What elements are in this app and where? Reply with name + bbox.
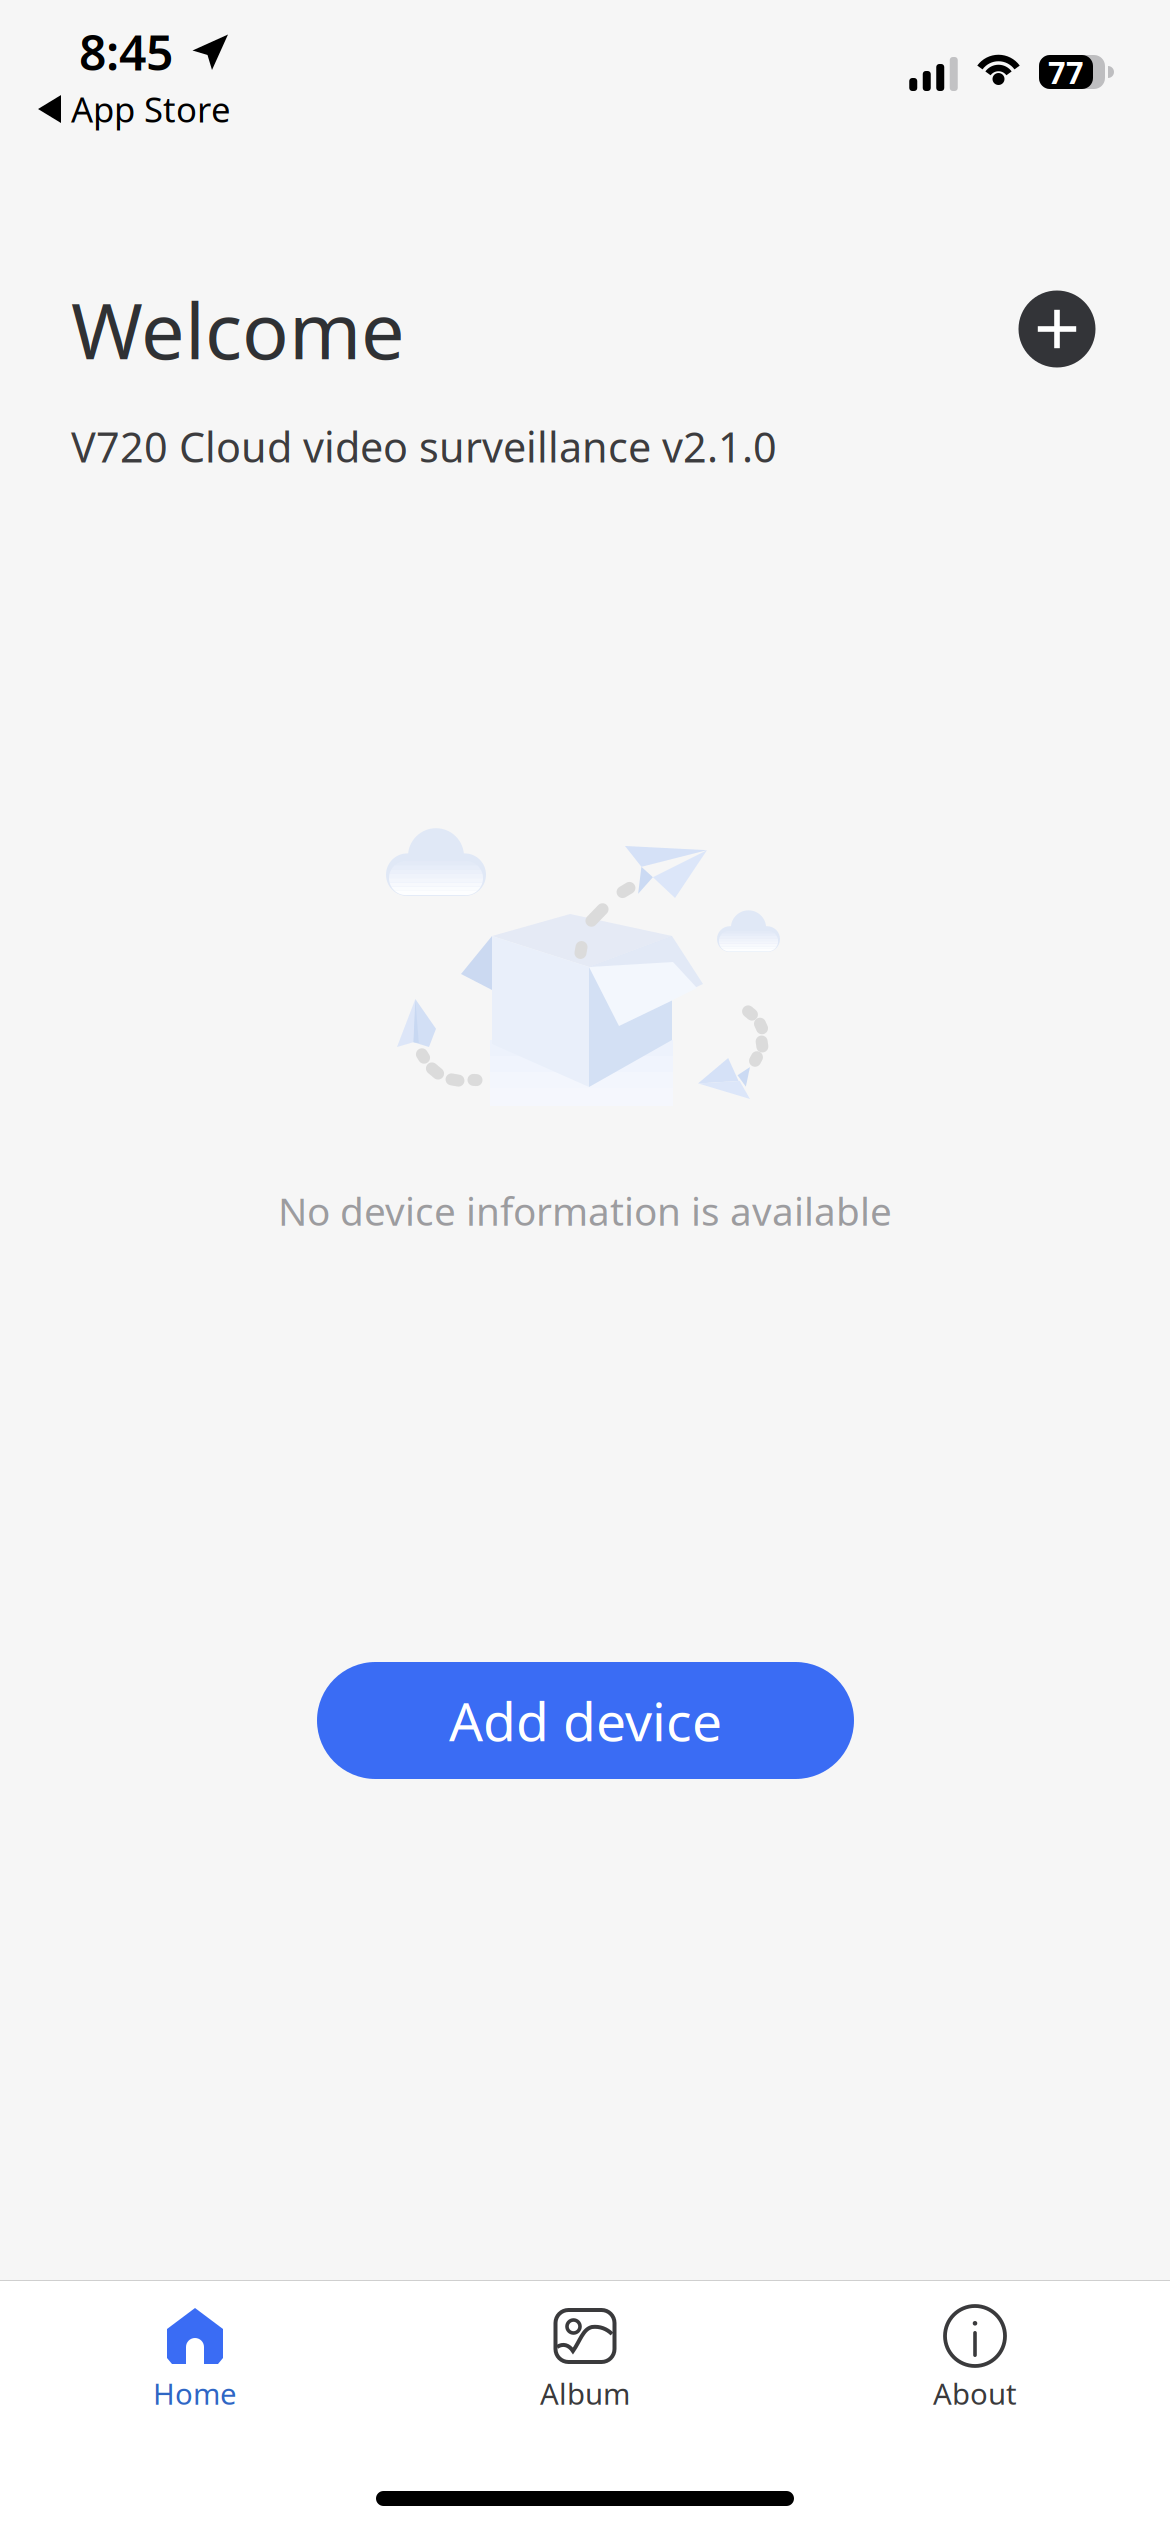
staticText: No device information is available: [278, 1185, 892, 1236]
button[interactable]: App Store: [34, 80, 235, 138]
button[interactable]: Home: [0, 2281, 390, 2431]
staticText: App Store: [71, 86, 231, 132]
staticText: V720 Cloud video surveillance v2.1.0: [71, 419, 777, 474]
button[interactable]: About: [780, 2281, 1170, 2431]
staticText: 77: [1048, 52, 1084, 92]
staticText: About: [933, 2374, 1017, 2413]
staticText: 8:45: [79, 20, 173, 84]
staticText: Welcome: [71, 278, 405, 381]
button[interactable]: Add device: [317, 1662, 854, 1779]
button[interactable]: Album: [390, 2281, 780, 2431]
button[interactable]: Add device: [1014, 286, 1100, 372]
staticText: Home: [153, 2374, 237, 2413]
staticText: Album: [540, 2374, 630, 2413]
staticText: Add device: [449, 1685, 722, 1756]
